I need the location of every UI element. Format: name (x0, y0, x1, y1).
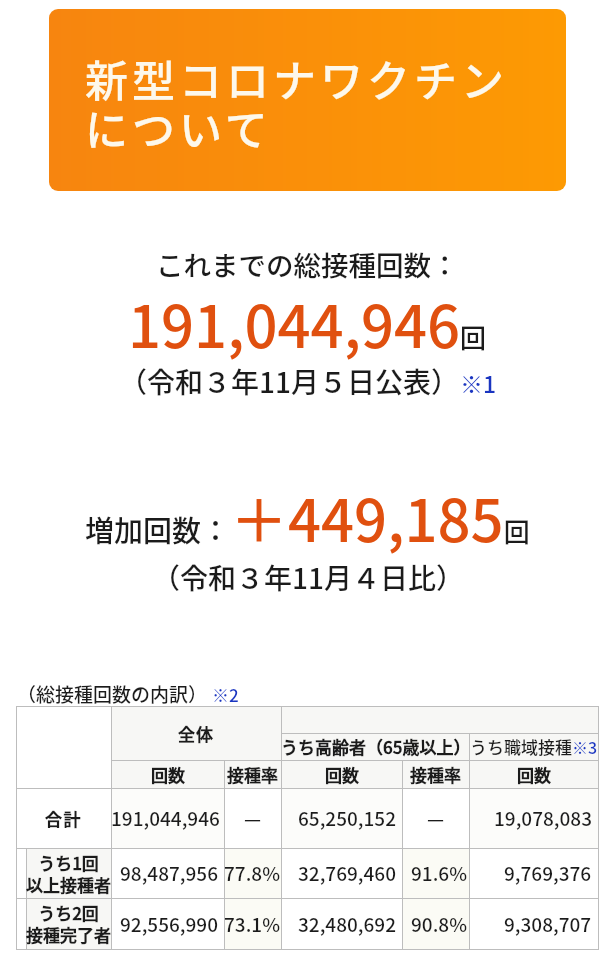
staticText: これまでの総接種回数： (156, 244, 459, 284)
staticText: — (427, 804, 445, 832)
staticText: 合計 (45, 806, 82, 831)
staticText: 9,308,707 (504, 910, 592, 938)
staticText: うち2回 接種完了者 (26, 900, 111, 947)
staticText: うち高齢者（65歳以上） (281, 734, 469, 759)
staticText: 19,078,083 (494, 804, 592, 832)
staticText: 接種率 (410, 762, 461, 787)
staticText: 回数 (325, 762, 359, 787)
staticText: 98,487,956 (120, 859, 218, 887)
staticText: 32,769,460 (298, 859, 396, 887)
staticText: 32,480,692 (298, 910, 396, 938)
staticText: 全体 (178, 721, 214, 746)
staticText: 増加回数：＋449,185回 (85, 475, 530, 559)
staticText: （令和３年11月５日公表） (119, 361, 459, 402)
staticText: 77.8% (224, 859, 279, 887)
button[interactable]: 新型コロナワクチン について (49, 9, 566, 191)
staticText: 73.1% (224, 910, 279, 938)
staticText: 65,250,152 (298, 804, 396, 832)
staticText: 91.6% (411, 859, 467, 887)
staticText: 接種率 (227, 762, 278, 787)
staticText: 回数 (517, 762, 551, 787)
staticText: 191,044,946回 (128, 281, 487, 365)
staticText: （令和３年11月４日比） (152, 557, 464, 598)
staticText: うち職域接種※3 (470, 734, 598, 759)
staticText: ※2 (212, 682, 239, 707)
staticText: 90.8% (411, 910, 467, 938)
staticText: 回数 (151, 762, 185, 787)
staticText: ※1 (460, 366, 497, 399)
staticText: 9,769,376 (504, 859, 592, 887)
staticText: 191,044,946 (111, 804, 218, 832)
staticText: うち1回 以上接種者 (26, 850, 111, 897)
staticText: （総接種回数の内訳） (17, 680, 208, 708)
staticText: 新型コロナワクチン について (85, 47, 508, 159)
staticText: — (244, 804, 262, 832)
staticText: 92,556,990 (120, 910, 218, 938)
